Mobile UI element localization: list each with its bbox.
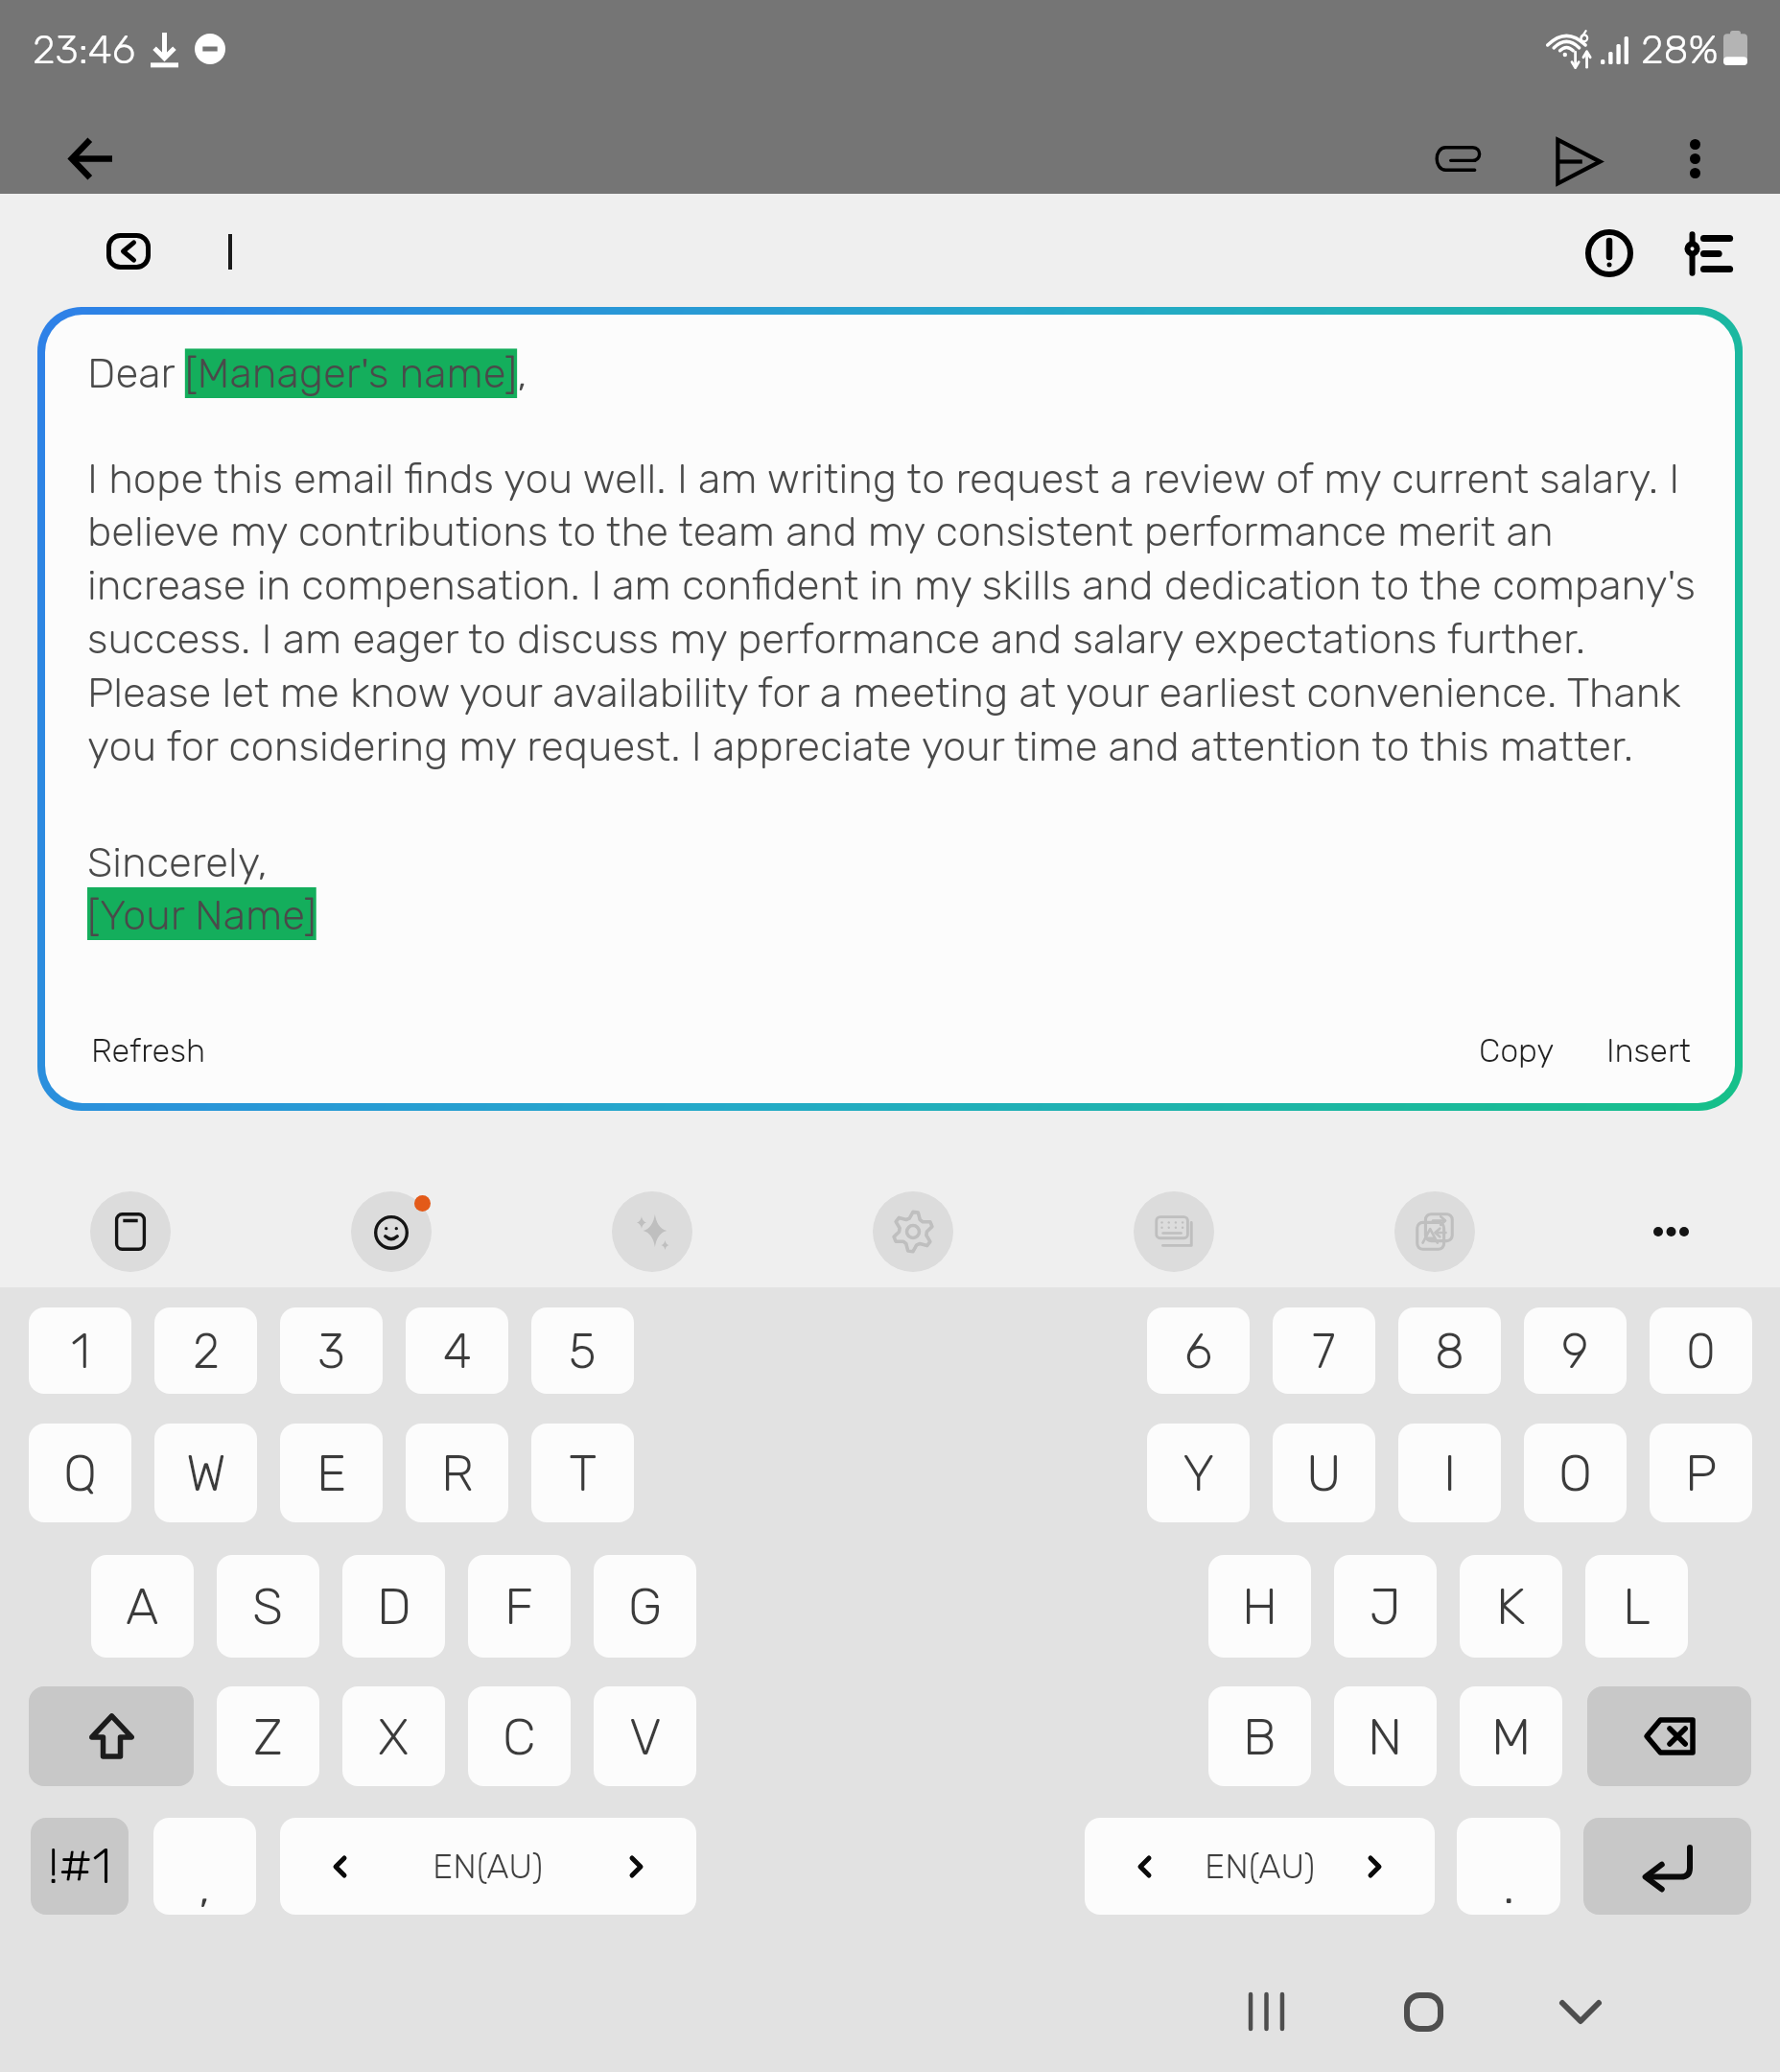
staticText: 8 — [1435, 1323, 1464, 1379]
staticText: 3 — [317, 1323, 345, 1379]
button[interactable]: P — [1650, 1424, 1752, 1522]
button[interactable]: Recents — [1213, 1959, 1319, 2064]
staticText: 4 — [443, 1323, 472, 1379]
button[interactable]: Y — [1147, 1424, 1250, 1522]
staticText: E — [316, 1443, 347, 1503]
staticText: L — [1623, 1576, 1651, 1636]
button[interactable]: Insert — [1601, 1020, 1697, 1081]
staticText: 23:46 — [33, 26, 136, 74]
button[interactable]: 4 — [406, 1307, 508, 1394]
button[interactable]: N — [1334, 1686, 1437, 1786]
staticText: I — [1443, 1443, 1457, 1503]
staticText: P — [1685, 1443, 1718, 1503]
button[interactable]: 2 — [154, 1307, 257, 1394]
staticText: 2 — [193, 1323, 220, 1379]
staticText: S — [252, 1576, 284, 1636]
staticText: Copy — [1479, 1031, 1555, 1070]
staticText: H — [1242, 1576, 1278, 1636]
staticText: K — [1496, 1576, 1526, 1636]
staticText: 5 — [569, 1323, 597, 1379]
button[interactable]: R — [406, 1424, 508, 1522]
button[interactable]: H — [1208, 1555, 1311, 1658]
button[interactable]: 0 — [1650, 1307, 1752, 1394]
button[interactable]: Backspace — [1587, 1686, 1751, 1786]
button[interactable]: 7 — [1273, 1307, 1375, 1394]
staticText: . — [1503, 1856, 1515, 1915]
button[interactable]: Show recipients — [84, 211, 173, 292]
button[interactable]: Space, EN(AU) — [1085, 1818, 1435, 1915]
button[interactable]: 3 — [280, 1307, 383, 1394]
button[interactable]: More options — [1653, 117, 1736, 200]
button[interactable]: 6 — [1147, 1307, 1250, 1394]
button[interactable]: 8 — [1398, 1307, 1501, 1394]
button[interactable]: Q — [29, 1424, 131, 1522]
button[interactable]: Shift — [29, 1686, 194, 1786]
button[interactable]: T — [531, 1424, 634, 1522]
button[interactable]: 9 — [1524, 1307, 1627, 1394]
staticText: Y — [1183, 1443, 1215, 1503]
button[interactable]: Priority — [1567, 211, 1651, 295]
staticText: Dear [Manager's name], — [87, 348, 1708, 398]
button[interactable]: Send — [1535, 117, 1618, 200]
button[interactable]: L — [1585, 1555, 1688, 1658]
button[interactable]: K — [1460, 1555, 1562, 1658]
button[interactable]: Space, EN(AU) — [280, 1818, 696, 1915]
button[interactable]: D — [342, 1555, 445, 1658]
button[interactable]: Attach file — [1417, 117, 1499, 200]
button[interactable]: B — [1208, 1686, 1311, 1786]
button[interactable]: Copy — [1473, 1020, 1560, 1081]
button[interactable]: X — [342, 1686, 445, 1786]
button[interactable]: O — [1524, 1424, 1627, 1522]
staticText: EN(AU) — [1205, 1846, 1316, 1887]
button[interactable]: Z — [217, 1686, 319, 1786]
button[interactable]: C — [468, 1686, 571, 1786]
button[interactable]: J — [1334, 1555, 1437, 1658]
button[interactable]: I — [1398, 1424, 1501, 1522]
button[interactable]: U — [1273, 1424, 1375, 1522]
staticText: W — [186, 1443, 226, 1503]
button[interactable]: F — [468, 1555, 571, 1658]
staticText: 9 — [1561, 1323, 1589, 1379]
staticText: R — [441, 1443, 474, 1503]
staticText: EN(AU) — [433, 1846, 544, 1887]
button[interactable]: 1 — [29, 1307, 131, 1394]
staticText: , — [199, 1856, 211, 1915]
button[interactable]: M — [1460, 1686, 1562, 1786]
button[interactable]: Translate — [1394, 1191, 1475, 1272]
staticText: O — [1558, 1443, 1593, 1503]
button[interactable]: Keyboard settings — [873, 1191, 953, 1272]
staticText: M — [1491, 1707, 1532, 1767]
button[interactable]: Text formatting — [1667, 211, 1751, 295]
staticText: B — [1243, 1707, 1276, 1767]
button[interactable]: 5 — [531, 1307, 634, 1394]
staticText: 7 — [1312, 1323, 1336, 1379]
button[interactable]: Keyboard layout — [1134, 1191, 1214, 1272]
staticText: Z — [253, 1707, 283, 1767]
button[interactable]: !#1 — [31, 1818, 129, 1915]
button[interactable]: Hide keyboard — [1528, 1959, 1633, 2064]
button[interactable]: W — [154, 1424, 257, 1522]
button[interactable]: . — [1457, 1818, 1560, 1915]
button[interactable]: G — [594, 1555, 696, 1658]
button[interactable]: , — [153, 1818, 256, 1915]
button[interactable]: Emoji — [351, 1191, 432, 1272]
button[interactable]: Enter — [1583, 1818, 1751, 1915]
staticText: G — [628, 1576, 663, 1636]
staticText: 6 — [1184, 1323, 1213, 1379]
button[interactable]: S — [217, 1555, 319, 1658]
staticText: Insert — [1606, 1031, 1691, 1070]
button[interactable]: V — [594, 1686, 696, 1786]
button[interactable]: A — [91, 1555, 194, 1658]
button[interactable]: More keyboard options — [1630, 1191, 1711, 1272]
staticText: 0 — [1686, 1323, 1716, 1379]
button[interactable]: Home — [1370, 1959, 1476, 2064]
button[interactable]: Clipboard — [90, 1191, 171, 1272]
staticText: X — [378, 1707, 410, 1767]
button[interactable]: Back — [50, 117, 132, 200]
staticText: V — [629, 1707, 662, 1767]
button[interactable]: E — [280, 1424, 383, 1522]
staticText: N — [1368, 1707, 1403, 1767]
staticText: Refresh — [91, 1031, 205, 1070]
button[interactable]: Refresh — [85, 1020, 211, 1081]
button[interactable]: AI assist — [612, 1191, 692, 1272]
